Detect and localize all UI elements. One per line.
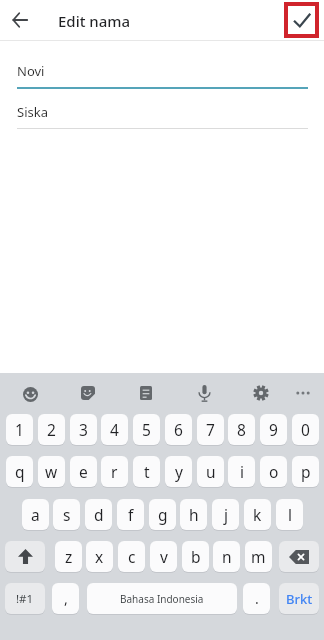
button[interactable]: s	[53, 499, 80, 530]
button[interactable]: 9	[260, 414, 287, 445]
staticText: 4	[110, 419, 119, 440]
staticText: Edit nama	[58, 11, 131, 31]
button[interactable]	[190, 379, 218, 407]
button[interactable]: q	[6, 456, 33, 487]
staticText: 3	[79, 419, 88, 440]
button[interactable]: r	[101, 456, 128, 487]
button[interactable]: b	[182, 541, 209, 572]
button[interactable]: h	[180, 499, 207, 530]
button[interactable]: u	[197, 456, 224, 487]
button[interactable]: ,	[52, 583, 79, 614]
staticText: 9	[269, 419, 278, 440]
staticText: Brkt	[286, 590, 313, 608]
button[interactable]	[74, 379, 102, 407]
button[interactable]: l	[276, 499, 303, 530]
staticText: k	[253, 504, 262, 525]
staticText: c	[128, 546, 136, 567]
staticText: !#1	[16, 591, 34, 607]
button[interactable]	[132, 379, 160, 407]
staticText: z	[65, 546, 73, 567]
button[interactable]: 6	[165, 414, 192, 445]
staticText: Bahasa Indonesia	[120, 592, 204, 606]
staticText: 5	[142, 419, 151, 440]
button[interactable]: Novi	[17, 62, 45, 80]
staticText: g	[158, 504, 168, 525]
staticText: 8	[237, 419, 246, 440]
button[interactable]: 7	[197, 414, 224, 445]
button[interactable]: Siska	[17, 103, 48, 121]
staticText: v	[160, 546, 168, 567]
button[interactable]: f	[117, 499, 144, 530]
staticText: 6	[174, 419, 183, 440]
staticText: w	[45, 461, 58, 482]
button[interactable]: k	[244, 499, 271, 530]
staticText: q	[15, 461, 25, 482]
button[interactable]: p	[292, 456, 319, 487]
button[interactable]: e	[70, 456, 97, 487]
button[interactable]: t	[133, 456, 160, 487]
staticText: h	[189, 504, 199, 525]
staticText: e	[79, 461, 88, 482]
button[interactable]: 1	[6, 414, 33, 445]
staticText: 1	[15, 419, 24, 440]
staticText: d	[94, 504, 104, 525]
button[interactable]: Bahasa Indonesia	[87, 583, 237, 614]
staticText: n	[222, 546, 232, 567]
button[interactable]: w	[38, 456, 65, 487]
button[interactable]: 3	[70, 414, 97, 445]
staticText: f	[128, 504, 134, 525]
button[interactable]: g	[149, 499, 176, 530]
staticText: l	[288, 504, 292, 525]
staticText: o	[269, 461, 279, 482]
button[interactable]: !#1	[5, 583, 45, 614]
button[interactable]: y	[165, 456, 192, 487]
staticText: 2	[47, 419, 56, 440]
button[interactable]: Brkt	[279, 583, 319, 614]
button[interactable]	[247, 379, 275, 407]
button[interactable]: j	[212, 499, 239, 530]
staticText: x	[95, 546, 104, 567]
button[interactable]	[6, 6, 34, 34]
staticText: t	[144, 461, 150, 482]
staticText: y	[175, 461, 183, 482]
button[interactable]: 8	[228, 414, 255, 445]
staticText: i	[240, 461, 244, 482]
button[interactable]: 5	[133, 414, 160, 445]
staticText: j	[224, 504, 228, 525]
button[interactable]: o	[260, 456, 287, 487]
button[interactable]: x	[86, 541, 113, 572]
button[interactable]: v	[150, 541, 177, 572]
staticText: b	[191, 546, 201, 567]
button[interactable]: .	[243, 583, 270, 614]
button[interactable]: a	[22, 499, 49, 530]
staticText: ,	[64, 589, 68, 608]
button[interactable]: d	[85, 499, 112, 530]
staticText: m	[251, 546, 266, 567]
staticText: 7	[206, 419, 215, 440]
button[interactable]	[5, 541, 45, 572]
button[interactable]	[284, 2, 319, 38]
staticText: s	[63, 504, 71, 525]
button[interactable]: 4	[101, 414, 128, 445]
button[interactable]: i	[228, 456, 255, 487]
button[interactable]	[279, 541, 319, 572]
staticText: u	[206, 461, 216, 482]
staticText: p	[301, 461, 311, 482]
button[interactable]	[291, 381, 315, 405]
button[interactable]: c	[118, 541, 145, 572]
button[interactable]: 0	[292, 414, 319, 445]
button[interactable]	[16, 380, 44, 408]
staticText: .	[255, 589, 259, 608]
button[interactable]: z	[55, 541, 82, 572]
button[interactable]: n	[213, 541, 240, 572]
button[interactable]: 2	[38, 414, 65, 445]
button[interactable]: m	[245, 541, 272, 572]
staticText: 0	[301, 419, 310, 440]
staticText: r	[111, 461, 118, 482]
staticText: a	[31, 504, 40, 525]
